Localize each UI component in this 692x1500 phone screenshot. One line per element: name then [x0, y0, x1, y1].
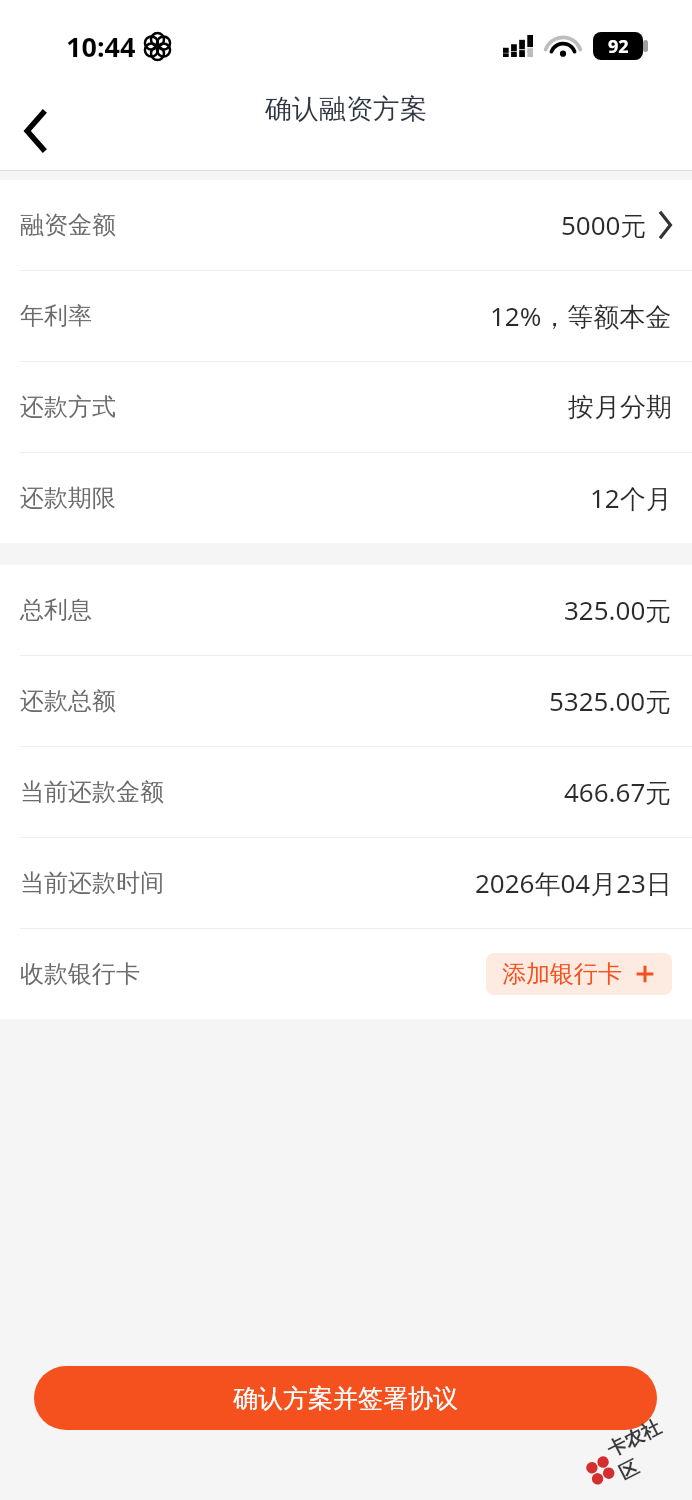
staticText: 还款总额 [20, 686, 116, 716]
staticText: 5000元 [561, 207, 647, 243]
staticText: 92 [608, 34, 629, 59]
button[interactable]: 总利息 [0, 565, 692, 655]
staticText: 按月分期 [568, 391, 672, 424]
button[interactable]: Back [0, 92, 72, 170]
staticText: 确认方案并签署协议 [233, 1383, 458, 1414]
staticText: 10:44 [66, 28, 136, 65]
staticText: 12个月 [590, 480, 672, 516]
staticText: 卡农社区 [603, 1409, 689, 1485]
staticText: 融资金额 [20, 210, 116, 240]
staticText: 当前还款时间 [20, 868, 164, 898]
button[interactable]: 还款总额 [0, 656, 692, 746]
staticText: 确认融资方案 [265, 92, 427, 126]
button[interactable]: 确认方案并签署协议 [34, 1366, 657, 1430]
staticText: 收款银行卡 [20, 959, 140, 989]
staticText: 12%，等额本金 [490, 298, 672, 334]
staticText: 2026年04月23日 [475, 865, 672, 901]
staticText: 当前还款金额 [20, 777, 164, 807]
staticText: 325.00元 [564, 592, 672, 628]
button[interactable]: 当前还款金额 [0, 747, 692, 837]
button[interactable]: 添加银行卡 [486, 953, 672, 995]
staticText: 还款方式 [20, 392, 116, 422]
button[interactable]: 当前还款时间 [0, 838, 692, 928]
button[interactable]: 还款方式 [0, 362, 692, 452]
staticText: 还款期限 [20, 483, 116, 513]
staticText: 5325.00元 [549, 683, 672, 719]
staticText: 总利息 [20, 595, 92, 625]
button[interactable]: 还款期限 [0, 453, 692, 543]
button[interactable]: 年利率 [0, 271, 692, 361]
staticText: 添加银行卡 [502, 959, 622, 989]
button[interactable]: 融资金额 [0, 180, 692, 270]
staticText: 466.67元 [564, 774, 672, 810]
staticText: 年利率 [20, 301, 92, 331]
